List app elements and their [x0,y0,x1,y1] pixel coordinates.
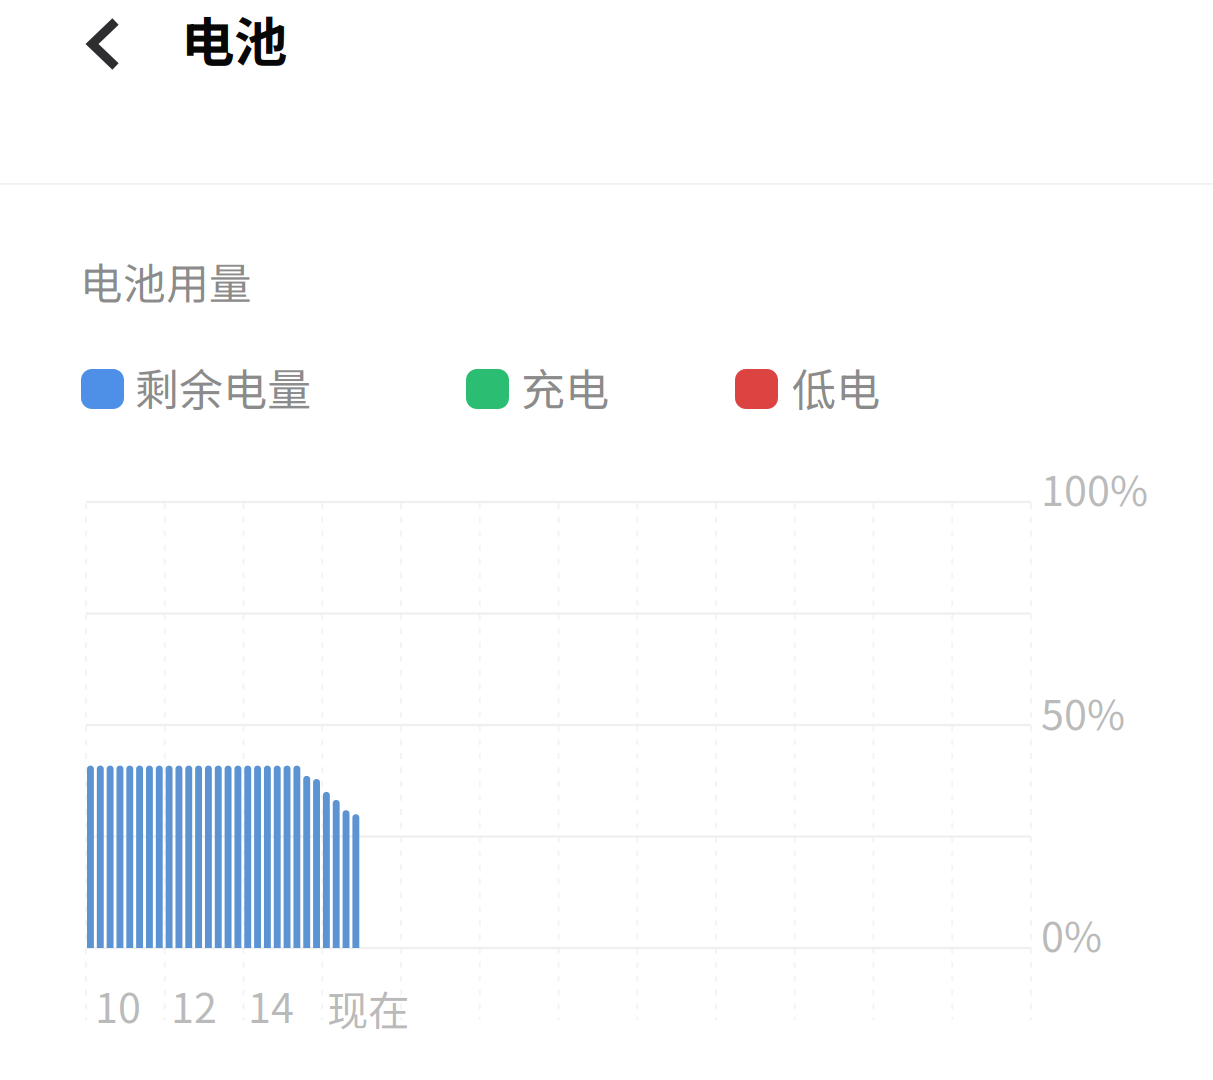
staticText: 充电 [521,355,609,419]
staticText: 0% [1041,904,1102,964]
staticText: 50% [1041,682,1125,742]
staticText: 电池 [181,0,287,77]
staticText: 10 [95,975,141,1035]
staticText: 电池用量 [80,250,252,312]
staticText: 现在 [327,978,409,1038]
staticText: 100% [1041,458,1148,518]
staticText: 剩余电量 [135,355,311,419]
button[interactable]: 返回 [52,0,148,92]
staticText: 低电 [792,355,880,419]
staticText: 14 [248,975,294,1035]
staticText: 12 [171,975,217,1035]
